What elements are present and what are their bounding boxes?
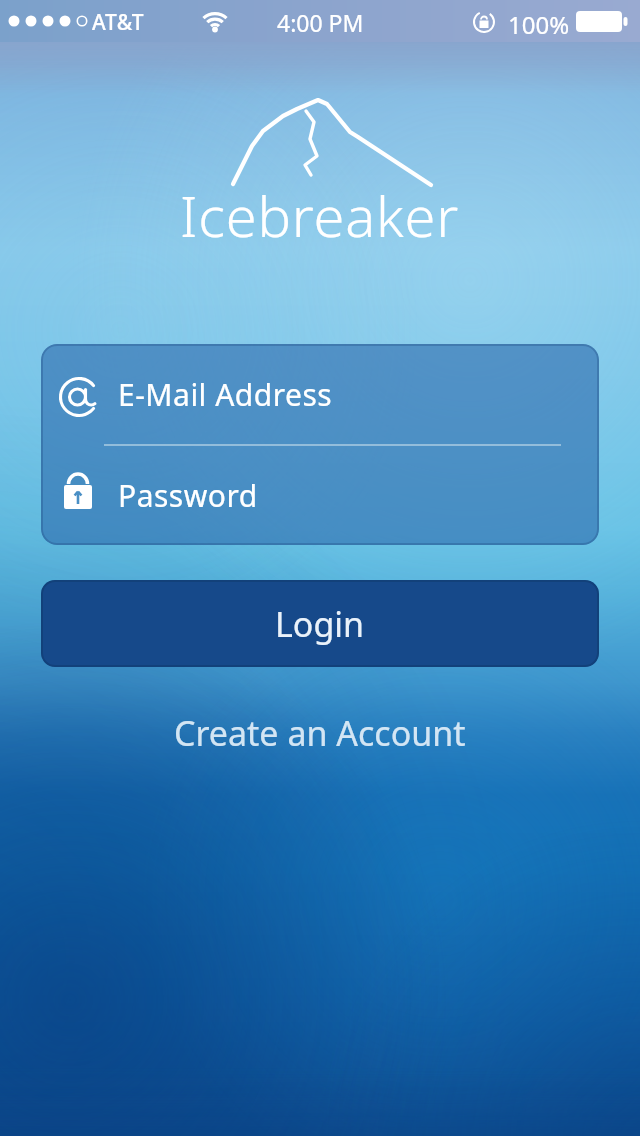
staticText: AT&T	[92, 8, 145, 37]
staticText: Create an Account	[174, 710, 466, 756]
button[interactable]: Login	[41, 580, 599, 667]
staticText: Login	[275, 601, 365, 647]
staticText: Password	[118, 475, 258, 516]
staticText: Icebreaker	[180, 177, 460, 253]
button[interactable]: Password	[41, 446, 599, 545]
staticText: 4:00 PM	[277, 7, 364, 38]
button[interactable]: E-Mail Address	[41, 344, 599, 444]
button[interactable]: Create an Account	[166, 702, 474, 764]
staticText: 100%	[508, 8, 570, 41]
staticText: E-Mail Address	[118, 374, 333, 415]
